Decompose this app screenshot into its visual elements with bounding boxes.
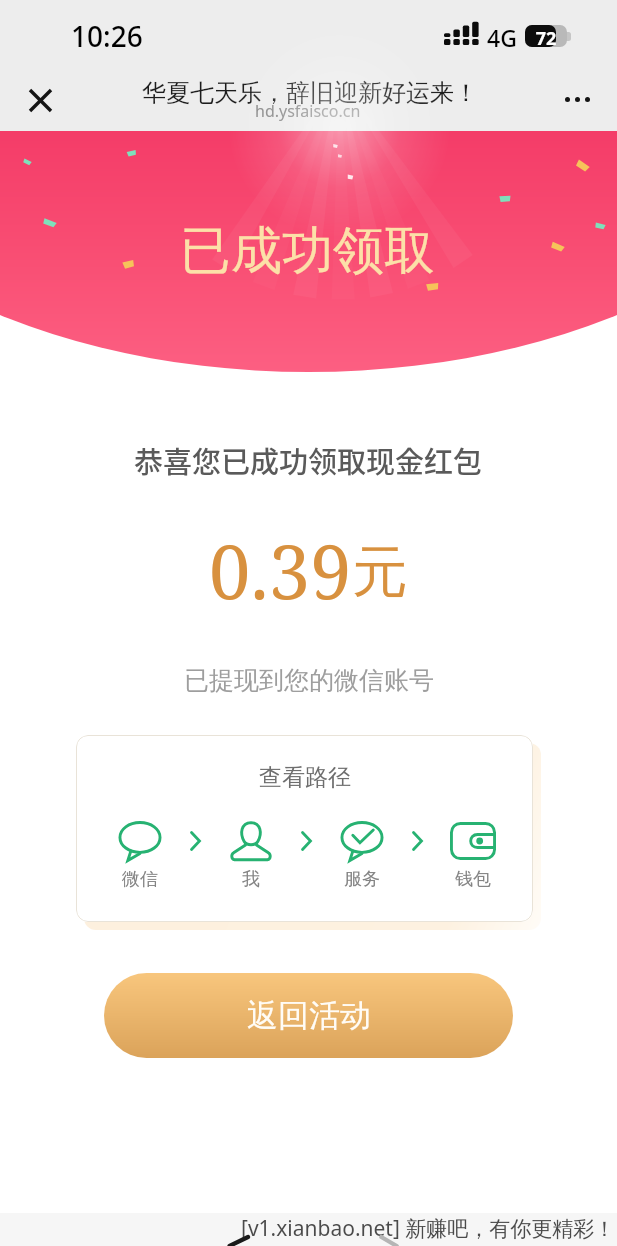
button[interactable]: 我 — [214, 820, 287, 891]
button[interactable]: More options — [553, 75, 601, 123]
button[interactable]: 返回活动 — [104, 973, 513, 1058]
staticText: 0.39 — [209, 520, 352, 621]
staticText: 已提现到您的微信账号 — [184, 665, 434, 696]
button[interactable]: 微信 — [103, 820, 176, 891]
staticText: hd.ysfaisco.cn — [255, 100, 361, 122]
staticText: [v1.xianbao.net] 新赚吧，有你更精彩！ — [241, 1214, 616, 1243]
staticText: 4G — [487, 22, 517, 53]
staticText: 华夏七天乐，辞旧迎新好运来！ — [142, 78, 478, 108]
staticText: 元 — [352, 537, 408, 608]
staticText: 恭喜您已成功领取现金红包 — [134, 439, 483, 481]
staticText: 我 — [242, 868, 260, 891]
button[interactable]: Close — [16, 76, 65, 125]
staticText: 服务 — [344, 868, 380, 891]
staticText: 查看路径 — [259, 763, 351, 792]
staticText: 钱包 — [455, 868, 491, 891]
staticText: 72 — [525, 26, 567, 48]
button[interactable]: 钱包 — [436, 820, 509, 891]
staticText: 已成功领取 — [180, 219, 435, 283]
staticText: 返回活动 — [247, 996, 371, 1035]
staticText: 10:26 — [71, 17, 143, 55]
staticText: 微信 — [122, 868, 158, 891]
button[interactable]: 服务 — [325, 820, 398, 891]
